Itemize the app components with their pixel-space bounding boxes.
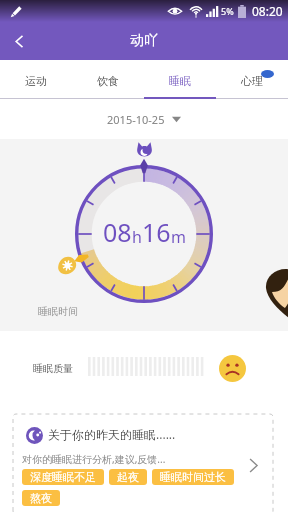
- staticText: 关于你的昨天的睡眠......: [48, 426, 176, 442]
- button[interactable]: 心理: [216, 60, 288, 99]
- button[interactable]: 深度睡眠不足: [22, 469, 104, 485]
- staticText: 08: [103, 215, 132, 249]
- staticText: 睡眠时间过长: [160, 470, 226, 484]
- staticText: 对你的睡眠进行分析,建议,反馈...: [22, 452, 166, 466]
- staticText: 心理: [241, 74, 263, 88]
- staticText: 深度睡眠不足: [30, 470, 96, 484]
- staticText: 16: [142, 215, 171, 249]
- staticText: 动吖: [130, 32, 158, 50]
- staticText: 睡眠时间: [38, 305, 78, 318]
- button[interactable]: 起夜: [109, 469, 147, 485]
- staticText: 08:20: [252, 3, 283, 19]
- button[interactable]: 运动: [0, 60, 72, 99]
- staticText: 睡眠质量: [33, 362, 73, 375]
- staticText: 饮食: [97, 74, 119, 88]
- button[interactable]: More: [241, 453, 265, 477]
- button[interactable]: 睡眠时间过长: [152, 469, 234, 485]
- button[interactable]: 饮食: [72, 60, 144, 99]
- button[interactable]: 2015-10-25: [97, 106, 191, 133]
- staticText: 5%: [221, 5, 234, 17]
- staticText: 起夜: [117, 470, 139, 484]
- staticText: h: [132, 226, 142, 248]
- staticText: m: [171, 226, 186, 248]
- button[interactable]: Back: [0, 22, 38, 60]
- button[interactable]: 熬夜: [22, 490, 60, 506]
- button[interactable]: 睡眠: [144, 60, 216, 99]
- staticText: 运动: [25, 74, 47, 88]
- staticText: 熬夜: [30, 491, 52, 505]
- staticText: 2015-10-25: [107, 112, 165, 127]
- staticText: 睡眠: [169, 74, 191, 88]
